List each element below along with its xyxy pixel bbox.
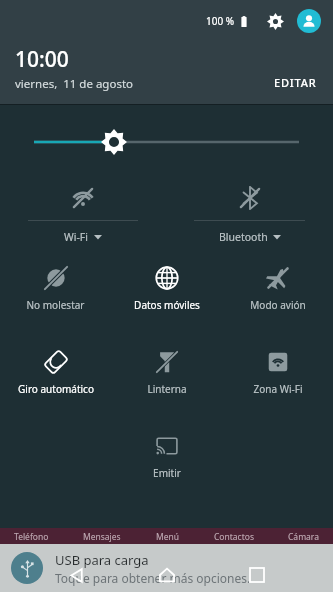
staticText: Emitir [153, 466, 181, 480]
staticText: Mensajes [83, 531, 121, 543]
button[interactable]: User profile [297, 9, 321, 33]
button[interactable]: Datos móviles [111, 261, 222, 312]
staticText: Bluetooth [219, 230, 268, 244]
button[interactable]: Bluetooth [166, 179, 333, 244]
staticText: Modo avión [250, 298, 306, 312]
staticText: Zona Wi-Fi [253, 382, 303, 396]
button[interactable]: Emitir [111, 429, 222, 480]
button[interactable]: USB para carga [0, 544, 333, 592]
button[interactable]: Giro automático [0, 345, 111, 396]
staticText: viernes, 11 de agosto [15, 76, 134, 92]
staticText: Cámara [288, 531, 319, 543]
button[interactable]: EDITAR [270, 73, 321, 92]
staticText: USB para carga [55, 551, 149, 569]
staticText: Teléfono [14, 531, 49, 543]
staticText: Toque para obtener más opciones. [55, 570, 251, 586]
button[interactable]: Home [152, 560, 182, 590]
staticText: 100 % [206, 14, 235, 28]
staticText: No molestar [26, 298, 85, 312]
button[interactable]: No molestar [0, 261, 111, 312]
button[interactable]: Back [61, 560, 91, 590]
staticText: 10:00 [15, 45, 69, 74]
button[interactable]: Linterna [111, 345, 222, 396]
button[interactable]: Settings [263, 9, 287, 33]
button[interactable]: Zona Wi-Fi [222, 345, 333, 396]
button[interactable]: Wi-Fi [0, 179, 166, 244]
staticText: Datos móviles [134, 298, 200, 312]
staticText: Contactos [214, 531, 254, 543]
staticText: Menú [156, 531, 180, 543]
staticText: Linterna [147, 382, 187, 396]
button[interactable]: Modo avión [222, 261, 333, 312]
staticText: Wi-Fi [64, 230, 89, 244]
button[interactable]: Recent apps [242, 560, 272, 590]
staticText: EDITAR [274, 75, 317, 90]
staticText: Giro automático [18, 382, 94, 396]
